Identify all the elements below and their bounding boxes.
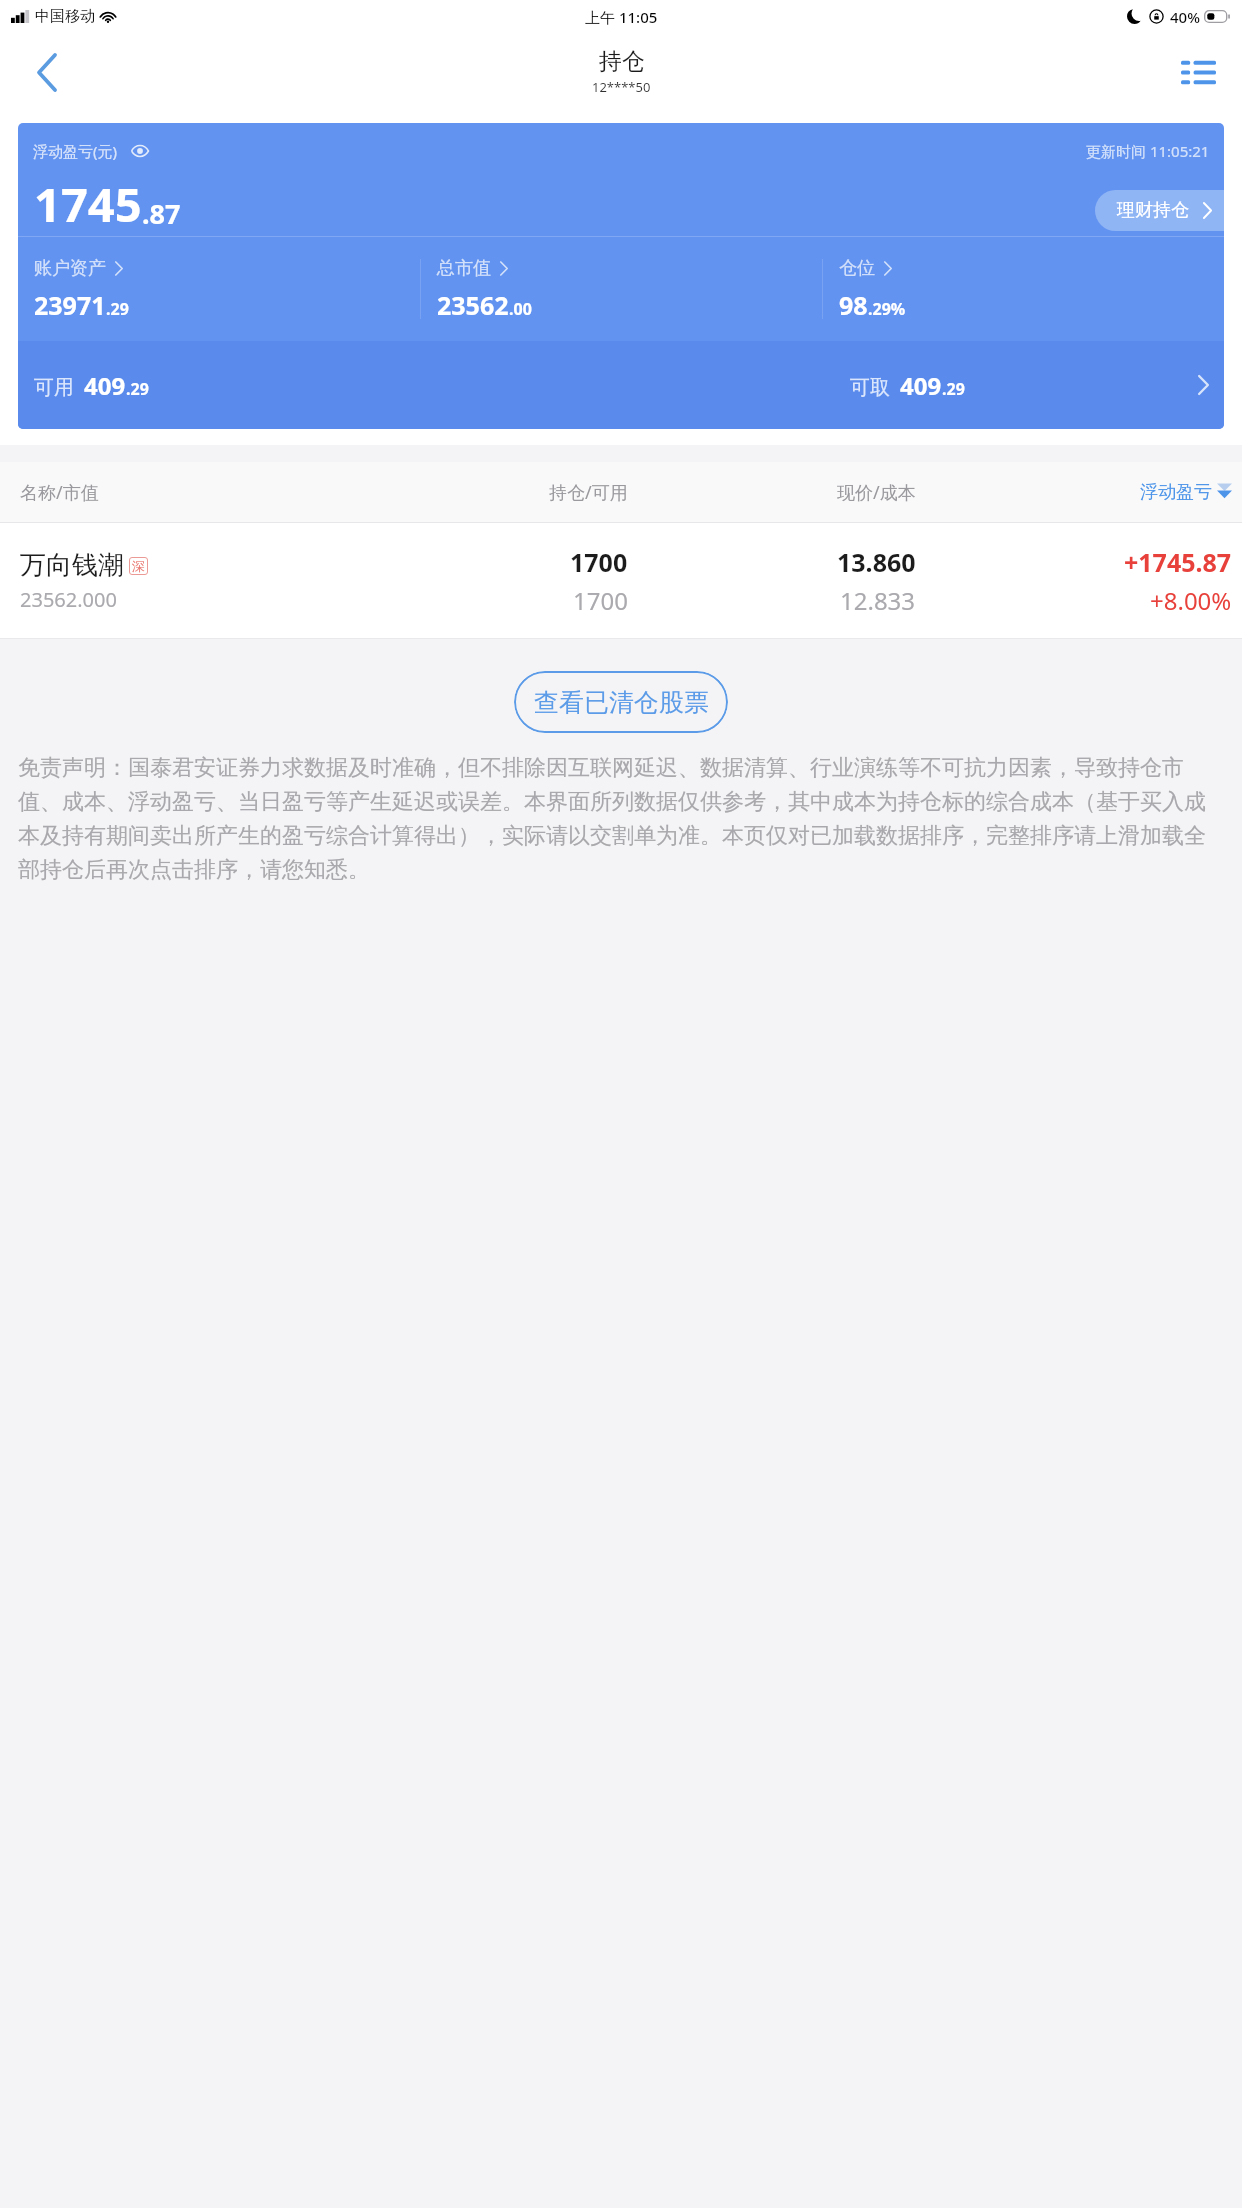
staticText: .29 (942, 378, 965, 400)
staticText: 持仓 (599, 47, 645, 76)
staticText: 持仓/可用 (549, 480, 628, 505)
staticText: 名称/市值 (20, 480, 99, 505)
staticText: .29 (106, 298, 129, 320)
staticText: .00 (509, 298, 532, 320)
staticText: 23971 (34, 288, 106, 322)
staticText: 98 (839, 288, 868, 322)
staticText: 万向钱潮 (20, 549, 124, 582)
staticText: +1745.87 (1124, 545, 1232, 579)
button[interactable]: Back (18, 43, 76, 101)
staticText: 仓位 (839, 257, 875, 280)
staticText: 更新时间 11:05:21 (1086, 141, 1210, 161)
staticText: 40% (1170, 7, 1200, 27)
staticText: 中国移动 (35, 7, 95, 26)
button[interactable]: Toggle amount visibility (128, 139, 152, 163)
staticText: 23562 (437, 288, 509, 322)
staticText: 深 (132, 558, 145, 574)
staticText: 可取 (850, 375, 890, 400)
button[interactable]: 总市值 (421, 237, 822, 341)
staticText: 409 (84, 369, 126, 402)
button[interactable]: Sort options (1170, 44, 1226, 100)
staticText: 账户资产 (34, 257, 106, 280)
staticText: 上午 11:05 (585, 7, 658, 27)
button[interactable]: 查看已清仓股票 (514, 671, 728, 733)
staticText: 可用 (34, 375, 74, 400)
button[interactable]: 持仓/可用 (345, 462, 628, 522)
staticText: 1745 (34, 172, 142, 236)
staticText: 409 (900, 369, 942, 402)
staticText: .87 (142, 195, 181, 232)
staticText: 免责声明：国泰君安证券力求数据及时准确，但不排除因互联网延迟、数据清算、行业演练… (18, 754, 1224, 884)
button[interactable]: 可用 (18, 341, 1224, 429)
staticText: .29 (126, 378, 149, 400)
staticText: 理财持仓 (1117, 199, 1189, 222)
staticText: 12****50 (592, 78, 651, 96)
staticText: 浮动盈亏(元) (33, 141, 118, 161)
staticText: 1700 (570, 545, 628, 579)
staticText: +8.00% (1150, 584, 1232, 617)
staticText: 1700 (573, 584, 628, 617)
staticText: 浮动盈亏 (1140, 481, 1212, 504)
button[interactable]: 现价/成本 (628, 462, 916, 522)
staticText: 现价/成本 (837, 480, 916, 505)
staticText: 13.860 (837, 545, 916, 579)
button[interactable]: 万向钱潮 (0, 523, 1242, 639)
staticText: 查看已清仓股票 (534, 687, 709, 718)
staticText: 23562.000 (20, 586, 117, 613)
button[interactable]: 浮动盈亏 (916, 462, 1232, 522)
staticText: 12.833 (840, 584, 916, 617)
button[interactable]: 仓位 (823, 237, 1224, 341)
button[interactable]: 理财持仓 (1095, 190, 1224, 231)
button[interactable]: 账户资产 (18, 237, 420, 341)
staticText: 总市值 (437, 257, 491, 280)
staticText: .29% (868, 298, 906, 320)
button[interactable]: 名称/市值 (20, 462, 345, 522)
